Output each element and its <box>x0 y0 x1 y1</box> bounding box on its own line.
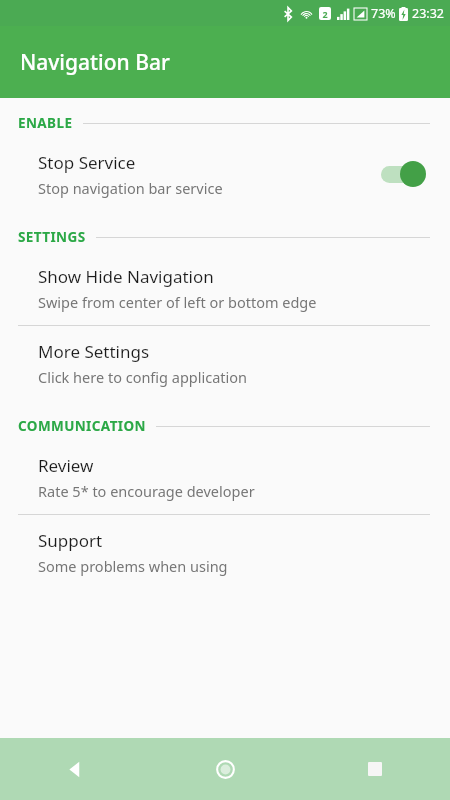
button[interactable]: Stop Service <box>0 137 450 211</box>
staticText: More Settings <box>38 340 150 363</box>
staticText: Swipe from center of left or bottom edge <box>38 292 317 312</box>
staticText: Support <box>38 529 103 552</box>
staticText: Review <box>38 454 94 477</box>
button[interactable]: Show Hide Navigation <box>0 251 450 325</box>
staticText: 73% <box>371 5 396 22</box>
button[interactable]: Back <box>0 738 150 800</box>
staticText: COMMUNICATION <box>18 417 146 435</box>
button[interactable]: More Settings <box>0 326 450 400</box>
staticText: 23:32 <box>412 5 444 22</box>
button[interactable]: Home <box>150 738 300 800</box>
staticText: Stop navigation bar service <box>38 178 223 198</box>
staticText: Click here to config application <box>38 367 248 387</box>
staticText: Show Hide Navigation <box>38 265 214 288</box>
button[interactable]: Stop Service toggle <box>378 158 430 190</box>
staticText: SETTINGS <box>18 228 86 246</box>
button[interactable]: Support <box>0 515 450 589</box>
button[interactable]: Recent apps <box>300 738 450 800</box>
staticText: 2 <box>322 8 328 20</box>
staticText: ENABLE <box>18 114 73 132</box>
staticText: Navigation Bar <box>20 48 170 77</box>
staticText: Some problems when using <box>38 556 228 576</box>
staticText: Stop Service <box>38 151 136 174</box>
button[interactable]: Review <box>0 440 450 514</box>
staticText: Rate 5* to encourage developer <box>38 481 255 501</box>
